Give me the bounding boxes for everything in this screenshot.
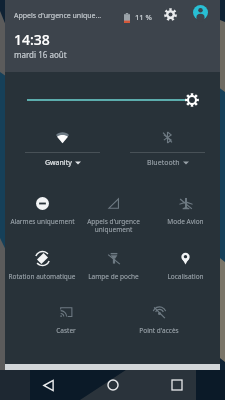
button[interactable]: Luminosité (22, 92, 200, 108)
staticText: 14:38 (14, 30, 50, 49)
staticText: Gwanity (45, 158, 72, 168)
button[interactable]: Localisation (150, 249, 220, 291)
button[interactable]: Caster (31, 303, 101, 345)
button[interactable]: Rotation automatique (7, 249, 77, 291)
staticText: 11 % (135, 12, 152, 22)
button[interactable]: Mode Avion (150, 194, 220, 236)
button[interactable]: Lampe de poche (78, 249, 148, 291)
staticText: Rotation automatique (8, 272, 76, 281)
staticText: Appels d'urgence unique... (14, 11, 102, 21)
button[interactable]: Point d'accès (124, 303, 194, 345)
staticText: Localisation (167, 272, 204, 281)
button[interactable]: Bluetooth (115, 123, 220, 169)
button[interactable]: Alarmes uniquement (7, 194, 77, 236)
staticText: Lampe de poche (88, 272, 139, 281)
staticText: mardi 16 août (14, 49, 67, 60)
staticText: Point d'accès (139, 326, 179, 335)
staticText: Appels d'urgence uniquement (87, 217, 140, 234)
staticText: Alarmes uniquement (10, 217, 75, 226)
button[interactable]: Utilisateur (192, 4, 209, 21)
button[interactable]: Applications récentes (163, 371, 191, 399)
button[interactable]: Accueil (99, 371, 127, 399)
staticText: Mode Avion (167, 217, 204, 226)
staticText: Caster (56, 326, 76, 335)
button[interactable]: Retour (34, 371, 62, 399)
button[interactable]: Paramètres (162, 6, 178, 22)
button[interactable]: Gwanity (10, 123, 115, 169)
button[interactable]: Appels d'urgence uniquement (78, 194, 148, 236)
staticText: Bluetooth (147, 158, 180, 168)
